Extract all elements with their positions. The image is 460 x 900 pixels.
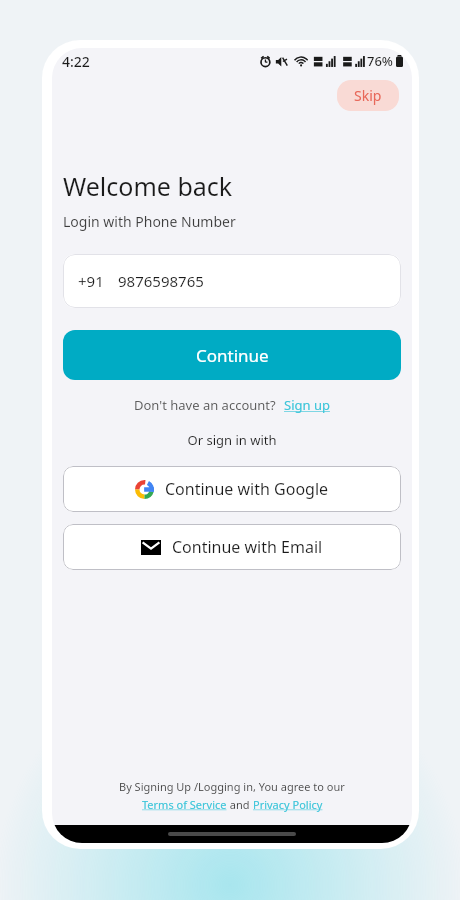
staticText: Privacy Policy <box>253 797 323 812</box>
button[interactable]: Email <box>63 524 401 570</box>
staticText: Welcome back <box>63 169 233 203</box>
staticText: Sign up <box>284 396 330 414</box>
staticText: 9876598765 <box>118 271 204 291</box>
staticText: Continue <box>196 344 269 367</box>
button[interactable]: +91 <box>63 254 401 308</box>
button[interactable]: Skip <box>337 80 399 111</box>
staticText: Skip <box>354 86 382 105</box>
staticText: and <box>227 797 253 812</box>
button[interactable]: Privacy Policy <box>253 797 323 812</box>
other: Google <box>135 480 154 499</box>
button[interactable]: Sign up <box>284 396 330 414</box>
button[interactable]: Google <box>63 466 401 512</box>
button[interactable]: Terms of Service <box>142 797 227 812</box>
staticText: Or sign in with <box>63 431 401 449</box>
staticText: Terms of Service <box>142 797 227 812</box>
button[interactable]: Continue <box>63 330 401 380</box>
other: Email <box>141 540 161 555</box>
staticText: 4:22 <box>62 52 90 71</box>
staticText: Continue with Email <box>172 536 323 558</box>
staticText: 76% <box>367 52 393 70</box>
staticText: By Signing Up /Logging in, You agree to … <box>119 779 345 794</box>
staticText: Login with Phone Number <box>63 212 236 231</box>
staticText: Continue with Google <box>165 478 329 500</box>
staticText: +91 <box>78 271 104 291</box>
staticText: Don't have an account? <box>134 396 276 414</box>
